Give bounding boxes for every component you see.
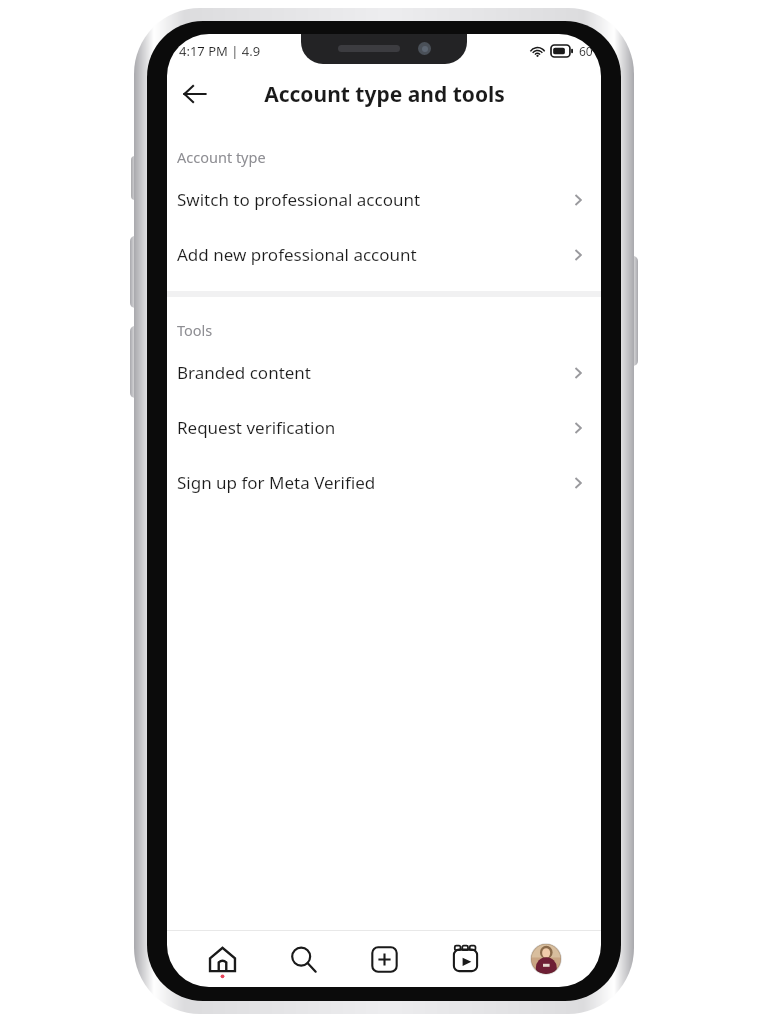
button[interactable]: Switch to professional account xyxy=(167,172,601,227)
staticText: Add new professional account xyxy=(177,243,569,266)
staticText: Branded content xyxy=(177,361,569,384)
staticText: 4:17 PM | 4.9 xyxy=(179,42,261,60)
button[interactable]: Home xyxy=(196,933,248,985)
button[interactable]: Request verification xyxy=(167,400,601,455)
button[interactable]: Create xyxy=(358,933,410,985)
staticText: Tools xyxy=(177,320,213,340)
staticText: Request verification xyxy=(177,416,569,439)
button[interactable]: Branded content xyxy=(167,345,601,400)
button[interactable]: Add new professional account xyxy=(167,227,601,282)
staticText: Account type and tools xyxy=(264,80,505,109)
button[interactable]: Search xyxy=(277,933,329,985)
button[interactable]: Back xyxy=(173,72,217,116)
staticText: Sign up for Meta Verified xyxy=(177,471,569,494)
staticText: Account type xyxy=(177,147,266,167)
staticText: Switch to professional account xyxy=(177,188,569,211)
staticText: 60 xyxy=(579,43,593,59)
button[interactable]: Sign up for Meta Verified xyxy=(167,455,601,510)
button[interactable]: Profile xyxy=(520,933,572,985)
button[interactable]: Reels xyxy=(439,933,491,985)
